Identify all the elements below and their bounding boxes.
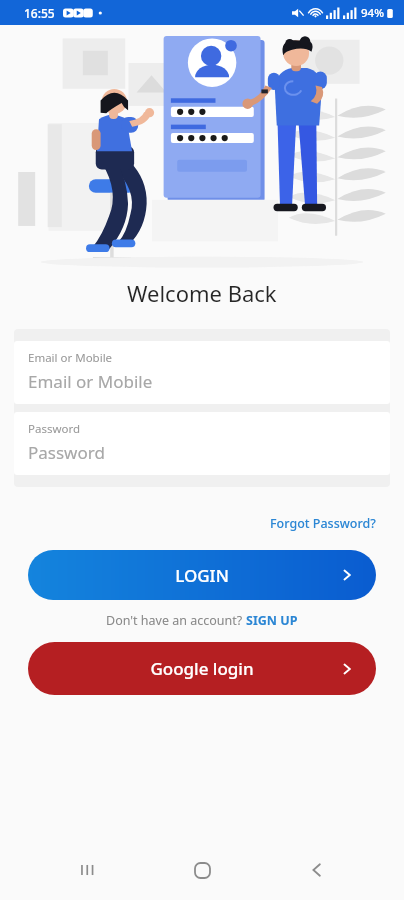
staticText: Password bbox=[28, 441, 105, 464]
button[interactable]: Home bbox=[174, 842, 230, 898]
staticText: 16:55 bbox=[24, 5, 55, 21]
staticText: SIGN UP bbox=[246, 612, 298, 629]
button[interactable]: Recent apps bbox=[59, 842, 115, 898]
staticText: Email or Mobile bbox=[28, 350, 113, 366]
staticText: Password bbox=[28, 421, 81, 437]
button[interactable]: Email or Mobile bbox=[14, 341, 390, 404]
staticText: Email or Mobile bbox=[28, 370, 153, 393]
button[interactable]: Password bbox=[14, 412, 390, 475]
staticText: Google login bbox=[150, 657, 254, 680]
staticText: Welcome Back bbox=[127, 278, 277, 308]
button[interactable]: Google login bbox=[28, 642, 376, 695]
staticText: Forgot Password? bbox=[270, 515, 376, 532]
button[interactable]: LOGIN bbox=[28, 550, 376, 600]
staticText: 94% bbox=[361, 5, 384, 21]
staticText: Don't have an account? bbox=[106, 612, 246, 629]
staticText: LOGIN bbox=[175, 564, 229, 587]
button[interactable]: Forgot Password? bbox=[242, 513, 404, 534]
button[interactable]: SIGN UP bbox=[246, 612, 298, 629]
button[interactable]: Back bbox=[289, 842, 345, 898]
